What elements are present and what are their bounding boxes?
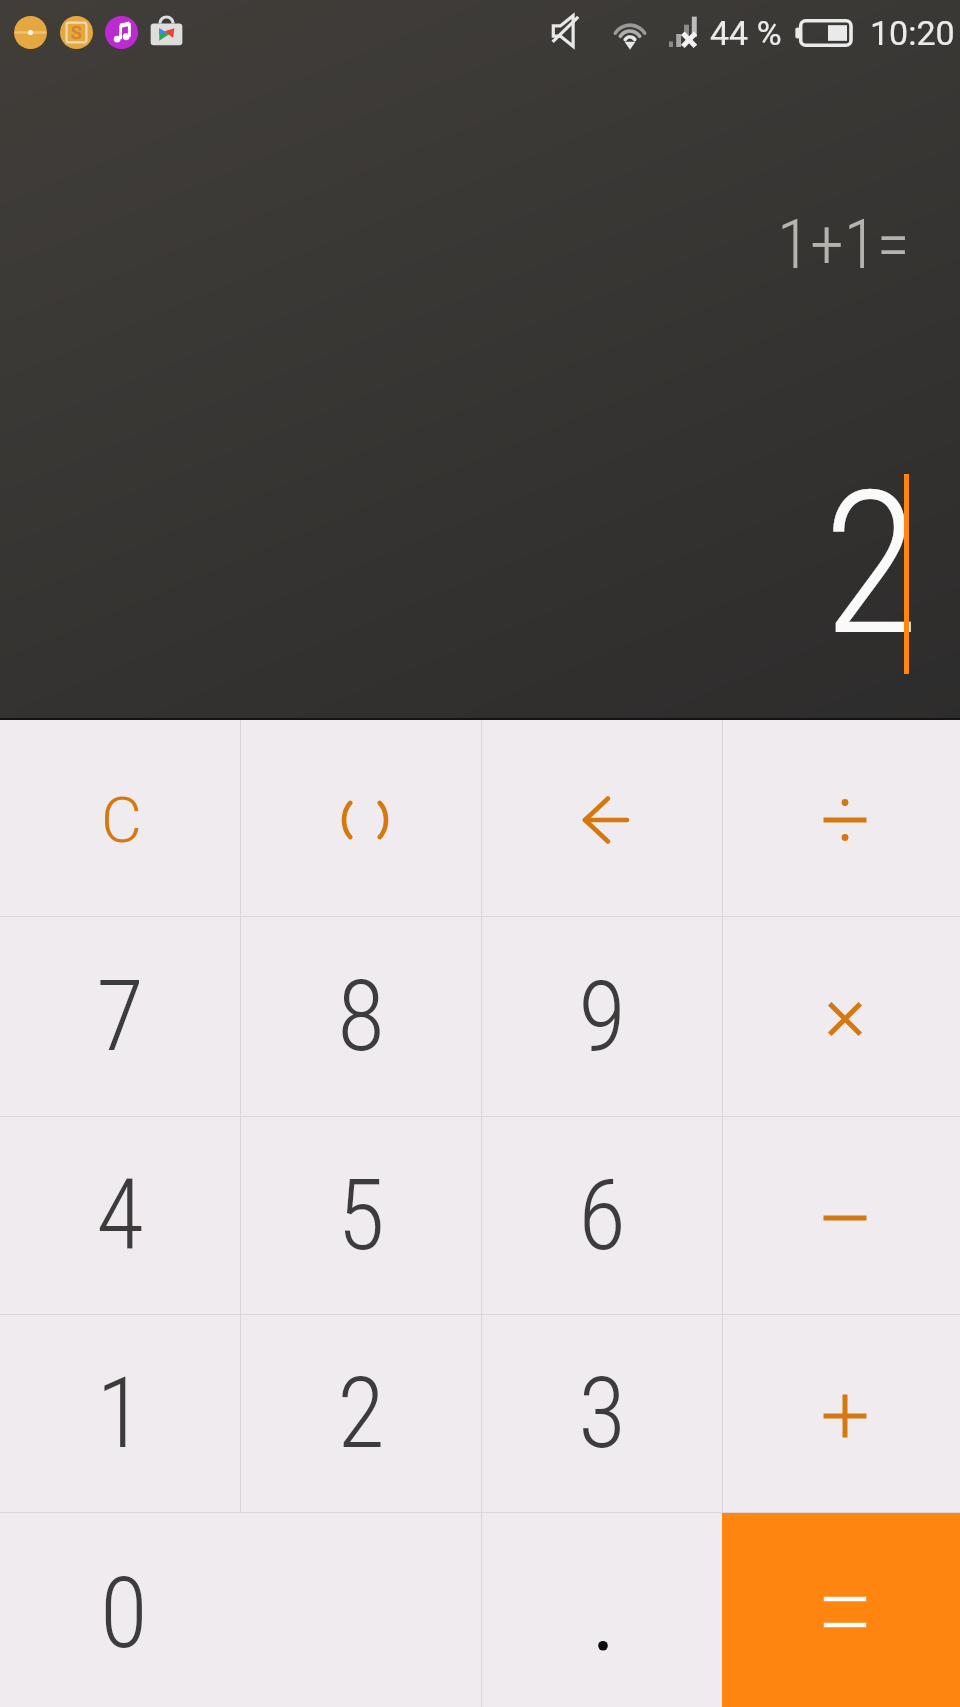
- button[interactable]: Backspace: [482, 720, 722, 916]
- staticText: 3: [578, 1356, 626, 1471]
- button[interactable]: Equals: [722, 1513, 960, 1707]
- button[interactable]: Divide: [723, 720, 958, 916]
- staticText: 9: [578, 959, 626, 1074]
- other: Backspace: [581, 795, 631, 845]
- button[interactable]: Decimal point: [482, 1513, 722, 1707]
- other: Divide: [820, 795, 870, 845]
- staticText: 1: [96, 1356, 144, 1471]
- staticText: 6: [578, 1158, 626, 1273]
- other: Multiply: [820, 994, 870, 1044]
- other: Silent mode: [552, 15, 584, 47]
- button[interactable]: 7: [0, 917, 240, 1116]
- button[interactable]: 0: [0, 1513, 481, 1707]
- staticText: C: [101, 784, 142, 858]
- staticText: 0: [100, 1556, 148, 1671]
- staticText: 8: [337, 959, 385, 1074]
- other: Mobile signal: [669, 16, 699, 47]
- button[interactable]: C: [0, 720, 240, 916]
- staticText: 1+1=: [777, 205, 910, 285]
- button[interactable]: Minus: [723, 1117, 958, 1314]
- staticText: 7: [96, 959, 144, 1074]
- button[interactable]: Plus: [723, 1315, 958, 1512]
- other: Wi-Fi: [611, 16, 649, 47]
- staticText: 5: [337, 1158, 385, 1273]
- staticText: S: [71, 22, 82, 43]
- button[interactable]: Parentheses: [241, 720, 481, 916]
- staticText: 44 %: [710, 13, 782, 53]
- other: Equals: [820, 1587, 870, 1637]
- other: Battery: [791, 19, 853, 47]
- other: Plus: [820, 1391, 870, 1441]
- button[interactable]: 2: [241, 1315, 481, 1512]
- other: Minus: [820, 1193, 870, 1243]
- button[interactable]: 5: [241, 1117, 481, 1314]
- staticText: 2: [337, 1356, 385, 1471]
- button[interactable]: 8: [241, 917, 481, 1116]
- button[interactable]: 3: [482, 1315, 722, 1512]
- button[interactable]: 9: [482, 917, 722, 1116]
- other: Decimal point: [566, 1574, 638, 1646]
- staticText: 10:20: [870, 13, 955, 53]
- button[interactable]: 1: [0, 1315, 240, 1512]
- other: Parentheses: [340, 795, 390, 845]
- staticText: 4: [96, 1158, 144, 1273]
- staticText: 2: [823, 448, 920, 680]
- button[interactable]: Multiply: [723, 917, 958, 1116]
- button[interactable]: 4: [0, 1117, 240, 1314]
- button[interactable]: 6: [482, 1117, 722, 1314]
